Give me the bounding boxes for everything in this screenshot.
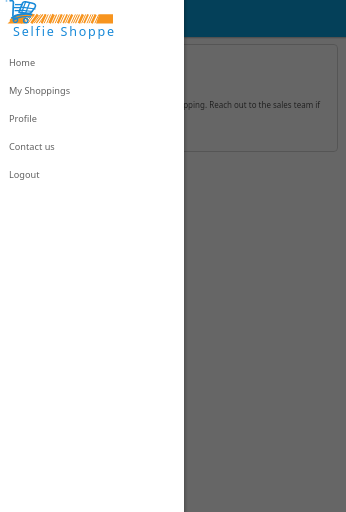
button[interactable]: Close navigation drawer — [0, 37, 346, 512]
staticText: is your one stop destination for all you… — [20, 99, 321, 110]
button[interactable]: My Shoppings — [0, 76, 184, 104]
button[interactable]: Profile — [0, 104, 184, 132]
staticText: My Shoppings — [9, 84, 71, 97]
button[interactable]: Logout — [0, 160, 184, 188]
button[interactable]: Selfie Shoppe home — [0, 0, 120, 40]
button[interactable]: Open navigation drawer — [0, 0, 37, 37]
staticText: Home — [9, 56, 36, 69]
button[interactable]: Contact us — [0, 132, 184, 160]
staticText: Contact us — [9, 140, 55, 153]
staticText: Selfie Shoppe — [13, 23, 116, 40]
staticText: you need help. — [20, 110, 76, 121]
button[interactable]: Home — [0, 48, 184, 76]
staticText: Logout — [9, 168, 40, 181]
staticText: Profile — [9, 112, 37, 125]
